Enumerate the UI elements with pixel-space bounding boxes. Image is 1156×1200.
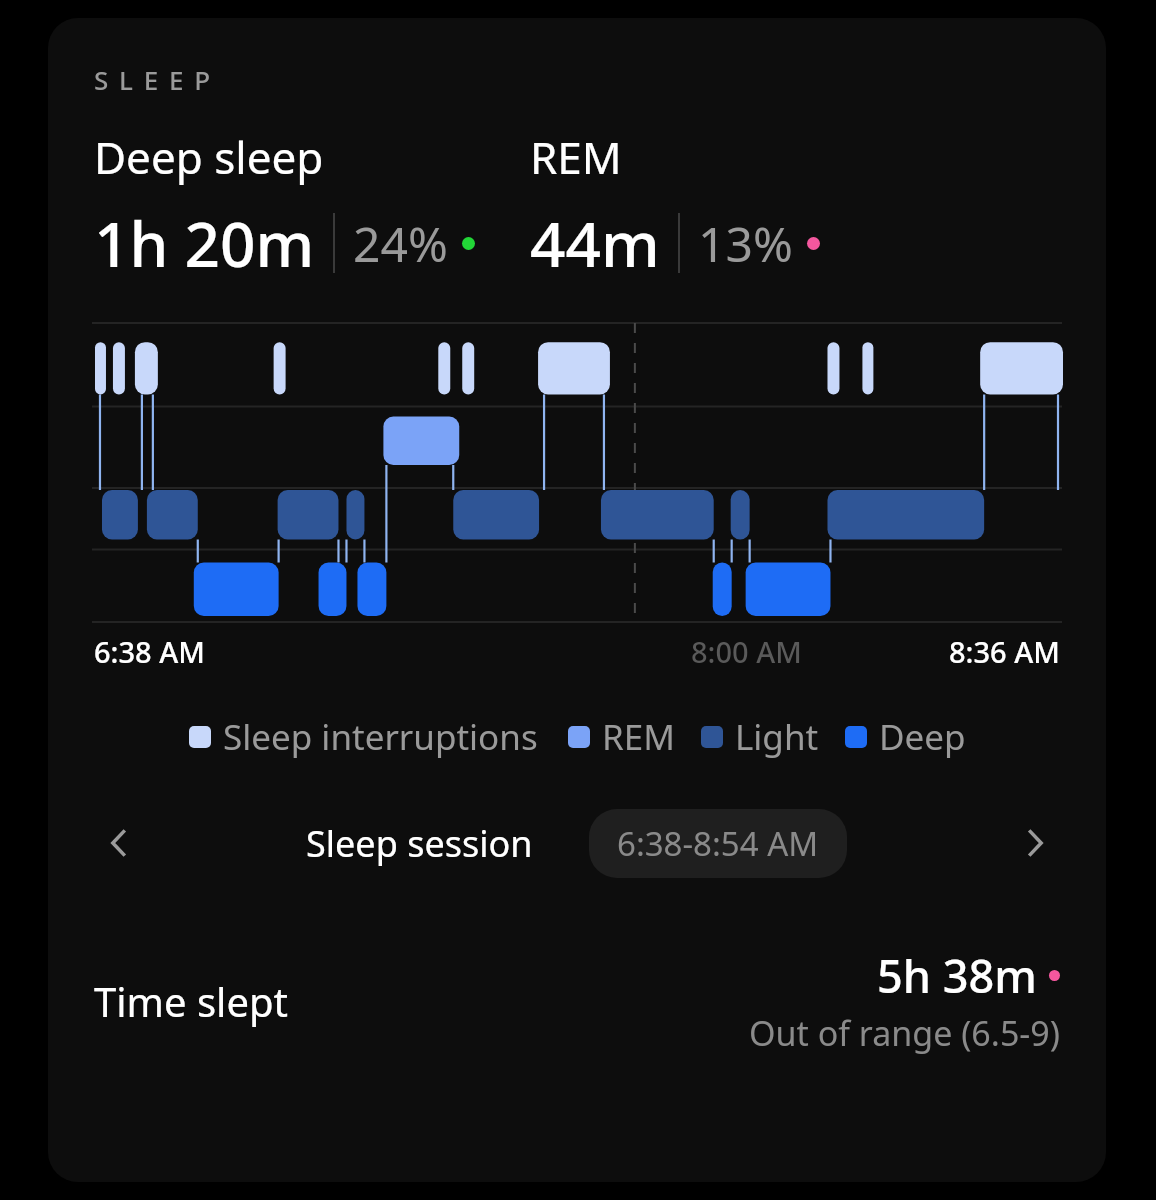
staticText: 8:36 AM [949, 632, 1060, 671]
button[interactable]: REM [568, 713, 675, 761]
staticText: S L E E P [94, 62, 213, 97]
button[interactable]: 6:38-8:54 AM [589, 809, 847, 878]
staticText: Sleep session [306, 819, 533, 868]
button[interactable]: Next sleep session [1006, 815, 1062, 871]
staticText: Light [735, 713, 819, 761]
button[interactable]: REM [530, 127, 950, 285]
staticText: Deep sleep [94, 127, 324, 187]
staticText: Sleep interruptions [223, 713, 538, 761]
staticText: 8:00 AM [691, 632, 802, 671]
button[interactable]: Deep sleep [94, 127, 530, 285]
button[interactable]: Previous sleep session [92, 815, 148, 871]
staticText: 1h 20m [94, 201, 315, 285]
staticText: REM [602, 713, 675, 761]
staticText: Out of range (6.5-9) [749, 1010, 1060, 1056]
staticText: 6:38 AM [94, 632, 205, 671]
staticText: 5h 38m [877, 945, 1037, 1006]
staticText: 13% [698, 211, 793, 276]
staticText: REM [530, 127, 622, 187]
staticText: 6:38-8:54 AM [617, 821, 819, 866]
button[interactable]: Light [701, 713, 819, 761]
staticText: 24% [353, 211, 448, 276]
button[interactable]: Sleep interruptions [189, 713, 538, 761]
staticText: Deep [879, 713, 966, 761]
staticText: Time slept [94, 974, 288, 1028]
staticText: 44m [530, 201, 660, 285]
button[interactable]: Deep [845, 713, 966, 761]
